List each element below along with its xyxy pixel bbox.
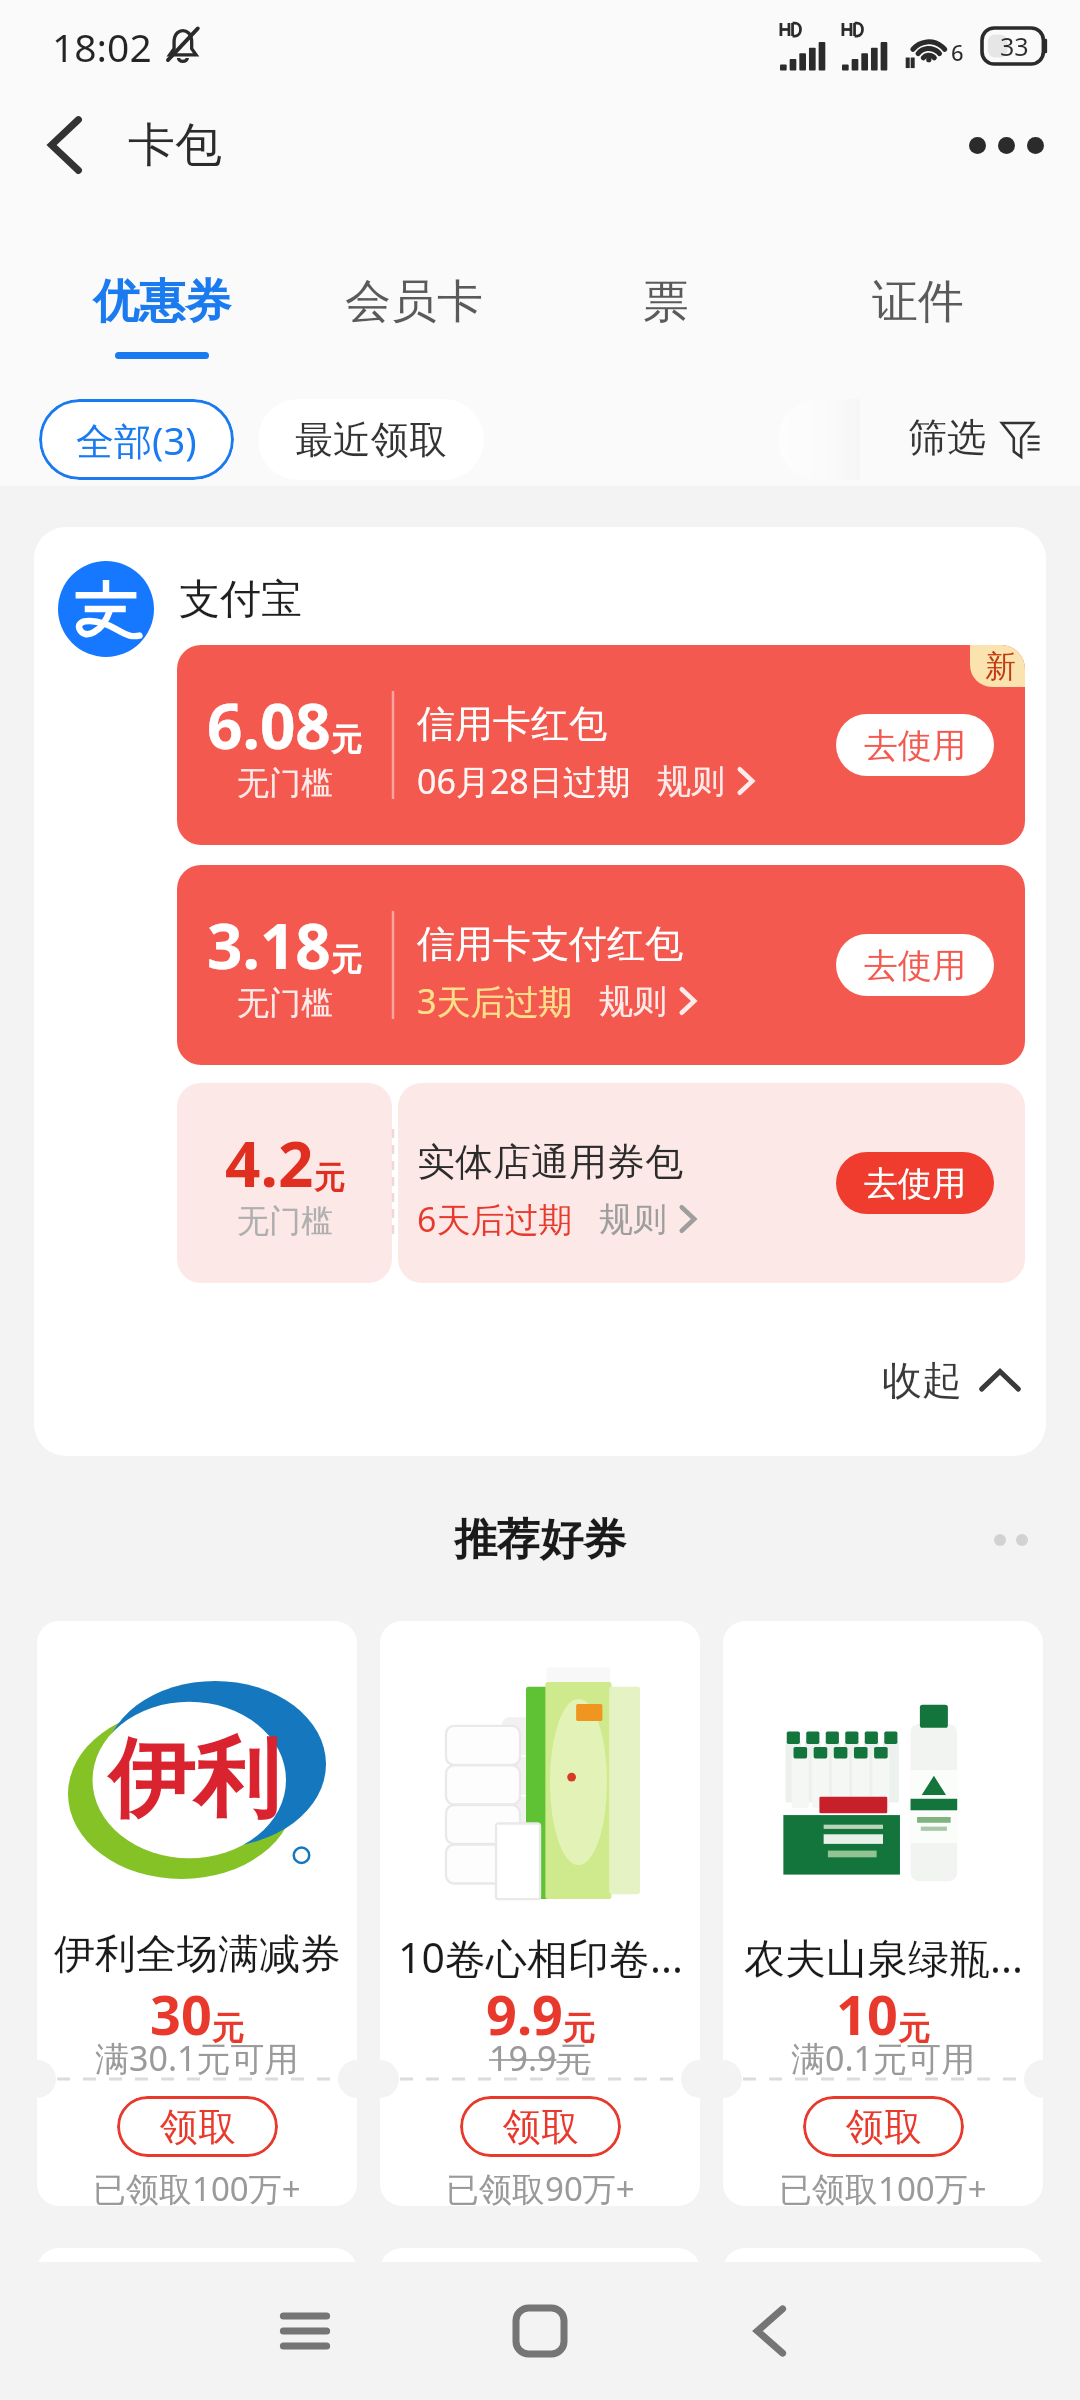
staticText: 会员卡: [345, 273, 483, 331]
staticText: 6: [951, 37, 964, 67]
staticText: 元: [314, 1158, 345, 1197]
staticText: 10卷心相印卷...: [398, 1929, 683, 1985]
staticText: 无门槛: [237, 983, 333, 1023]
button[interactable]: 去使用: [836, 1152, 994, 1214]
button[interactable]: Home: [470, 2262, 610, 2400]
button[interactable]: 10卷心相印卷...: [380, 1621, 700, 2206]
button[interactable]: Back: [13, 93, 117, 197]
staticText: 已领取100万+: [93, 2166, 301, 2206]
staticText: 30: [150, 1977, 212, 2051]
button[interactable]: Back: [700, 2262, 840, 2400]
button[interactable]: 最近领取: [258, 399, 484, 480]
button[interactable]: 去使用: [836, 934, 994, 996]
button[interactable]: 领取: [117, 2096, 278, 2157]
staticText: 19.9元: [489, 2035, 591, 2081]
staticText: 10: [836, 1977, 898, 2051]
staticText: 领取: [503, 2103, 579, 2151]
staticText: 无门槛: [237, 763, 333, 803]
staticText: 领取: [160, 2103, 236, 2151]
staticText: 筛选: [908, 413, 986, 462]
staticText: 无门槛: [237, 1201, 333, 1241]
staticText: 领取: [846, 2103, 922, 2151]
staticText: 最近领取: [295, 416, 447, 464]
button[interactable]: 优惠券: [36, 198, 288, 388]
button[interactable]: Recents: [235, 2262, 375, 2400]
staticText: 去使用: [864, 944, 966, 987]
button[interactable]: 领取: [460, 2096, 621, 2157]
staticText: 证件: [872, 273, 964, 331]
staticText: 元: [331, 720, 362, 759]
staticText: 信用卡红包: [417, 700, 607, 748]
button[interactable]: 3.18: [177, 865, 1025, 1065]
staticText: 3.18: [207, 903, 331, 987]
staticText: 元: [331, 940, 362, 979]
staticText: 优惠券: [93, 273, 231, 331]
staticText: 实体店通用券包: [417, 1138, 683, 1186]
staticText: 全部(3): [76, 414, 197, 466]
staticText: 4.2: [225, 1121, 314, 1205]
button[interactable]: 收起: [872, 1343, 1030, 1417]
button[interactable]: 筛选: [908, 413, 1046, 462]
staticText: 18:02: [52, 20, 152, 73]
staticText: 推荐好券: [454, 1513, 626, 1567]
staticText: 信用卡支付红包: [417, 920, 683, 968]
button[interactable]: 去使用: [836, 714, 994, 776]
staticText: 元: [212, 2008, 244, 2048]
staticText: 农夫山泉绿瓶...: [744, 1929, 1023, 1985]
staticText: 已领取100万+: [779, 2166, 987, 2206]
staticText: 规则: [599, 980, 667, 1023]
button[interactable]: 农夫山泉绿瓶...: [723, 1621, 1043, 2206]
staticText: 去使用: [864, 724, 966, 767]
button[interactable]: 全部(3): [39, 399, 234, 480]
staticText: 伊利全场满减券: [54, 1929, 341, 1981]
staticText: 去使用: [864, 1162, 966, 1205]
button[interactable]: 会员卡: [288, 198, 540, 388]
button[interactable]: 伊利: [37, 1621, 357, 2206]
staticText: 伊利: [108, 1725, 280, 1833]
staticText: 33: [1000, 29, 1029, 63]
button[interactable]: More options: [954, 93, 1058, 197]
staticText: 规则: [657, 760, 725, 803]
button[interactable]: 证件: [792, 198, 1044, 388]
staticText: 元: [898, 2008, 930, 2048]
staticText: 06月28日过期: [417, 758, 631, 804]
staticText: 收起: [882, 1355, 962, 1405]
button[interactable]: 6.08: [177, 645, 1025, 845]
staticText: 元: [563, 2008, 595, 2048]
button[interactable]: 4.2: [177, 1083, 1025, 1283]
staticText: 卡包: [128, 116, 222, 175]
staticText: 已领取90万+: [446, 2166, 635, 2206]
staticText: 新: [985, 647, 1016, 686]
button[interactable]: 领取: [803, 2096, 964, 2157]
staticText: 规则: [599, 1198, 667, 1241]
staticText: 满30.1元可用: [95, 2035, 299, 2081]
staticText: 6.08: [207, 683, 331, 767]
staticText: 3天后过期: [417, 978, 573, 1024]
staticText: 支付宝: [179, 574, 302, 626]
staticText: 9.9: [486, 1977, 563, 2051]
button[interactable]: 票: [540, 198, 792, 388]
staticText: 票: [643, 273, 689, 331]
staticText: 6天后过期: [417, 1196, 573, 1242]
staticText: 满0.1元可用: [791, 2035, 976, 2081]
